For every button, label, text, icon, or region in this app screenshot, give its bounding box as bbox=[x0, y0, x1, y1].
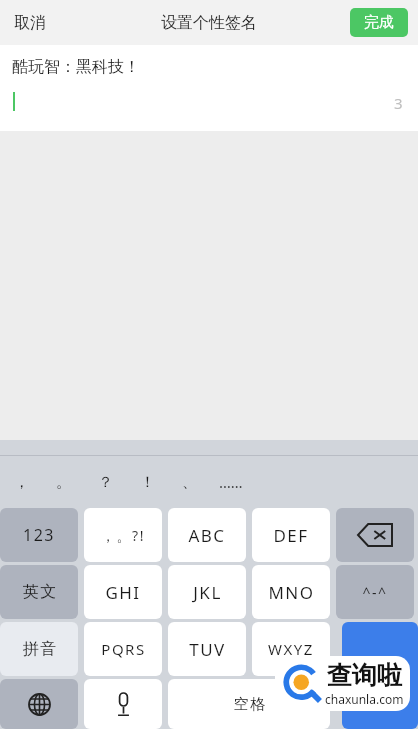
staticText: 、 bbox=[182, 473, 197, 492]
button[interactable]: 。 bbox=[42, 456, 84, 508]
staticText: ^-^ bbox=[362, 583, 388, 602]
staticText: 完成 bbox=[364, 13, 394, 32]
button[interactable]: 123 bbox=[0, 508, 78, 562]
staticText: ， bbox=[14, 473, 29, 492]
staticText: JKL bbox=[193, 581, 222, 604]
staticText: 取消 bbox=[14, 13, 46, 33]
button[interactable]: ，。?! bbox=[84, 508, 162, 562]
staticText: 英文 bbox=[22, 582, 57, 602]
staticText: 换行 bbox=[365, 666, 395, 685]
staticText: DEF bbox=[273, 524, 309, 547]
button[interactable]: 换行 bbox=[342, 622, 418, 729]
button[interactable]: TUV bbox=[168, 622, 246, 676]
button[interactable]: 英文 bbox=[0, 565, 78, 619]
staticText: TUV bbox=[189, 638, 226, 661]
staticText: 空格 bbox=[233, 695, 266, 714]
button[interactable]: MNO bbox=[252, 565, 330, 619]
button[interactable]: Voice input bbox=[84, 679, 162, 729]
button[interactable]: ？ bbox=[84, 456, 126, 508]
button[interactable]: ！ bbox=[126, 456, 168, 508]
button[interactable]: GHI bbox=[84, 565, 162, 619]
staticText: PQRS bbox=[101, 639, 146, 659]
staticText: ？ bbox=[98, 473, 113, 492]
staticText: ABC bbox=[188, 524, 226, 547]
button[interactable]: DEF bbox=[252, 508, 330, 562]
button[interactable]: ^-^ bbox=[336, 565, 414, 619]
button[interactable]: PQRS bbox=[84, 622, 162, 676]
staticText: 拼音 bbox=[22, 639, 57, 659]
button[interactable]: ABC bbox=[168, 508, 246, 562]
staticText: chaxunla.com bbox=[325, 691, 404, 707]
button[interactable]: 空格 bbox=[168, 679, 330, 729]
staticText: 123 bbox=[23, 524, 55, 546]
staticText: …… bbox=[219, 472, 243, 492]
button[interactable]: JKL bbox=[168, 565, 246, 619]
button[interactable]: 拼音 bbox=[0, 622, 78, 676]
button[interactable]: ， bbox=[0, 456, 42, 508]
staticText: 设置个性签名 bbox=[161, 13, 257, 33]
staticText: MNO bbox=[268, 581, 315, 604]
button[interactable]: WXYZ bbox=[252, 622, 330, 676]
staticText: ，。?! bbox=[101, 526, 145, 545]
staticText: GHI bbox=[105, 581, 141, 604]
button[interactable]: 取消 bbox=[4, 6, 56, 40]
staticText: 3 bbox=[394, 93, 403, 113]
button[interactable]: 完成 bbox=[350, 8, 408, 37]
staticText: WXYZ bbox=[268, 639, 314, 659]
staticText: 酷玩智：黑科技！ bbox=[12, 57, 140, 77]
button[interactable]: 、 bbox=[168, 456, 210, 508]
staticText: ！ bbox=[140, 473, 155, 492]
staticText: 。 bbox=[56, 473, 71, 492]
button[interactable]: Change keyboard language bbox=[0, 679, 78, 729]
button[interactable]: …… bbox=[210, 456, 252, 508]
staticText: 查询啦 bbox=[327, 660, 402, 691]
button[interactable]: Backspace bbox=[336, 508, 414, 562]
